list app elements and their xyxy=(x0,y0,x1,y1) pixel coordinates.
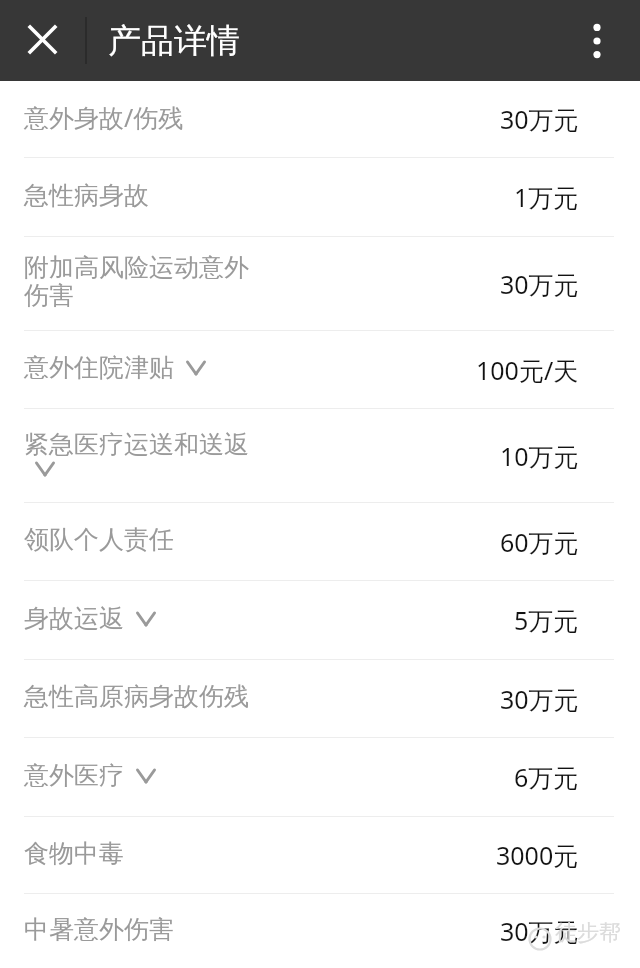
button[interactable]: 紧急医疗运送和送返 xyxy=(0,409,640,502)
staticText: 60万元 xyxy=(500,525,579,559)
staticText: 紧急医疗运送和送返 xyxy=(24,429,249,460)
staticText: 3000元 xyxy=(496,838,579,872)
button[interactable]: 领队个人责任 xyxy=(0,503,640,580)
staticText: 意外身故/伤残 xyxy=(24,100,184,134)
staticText: 身故运返 xyxy=(24,603,124,634)
button[interactable]: 急性病身故 xyxy=(0,158,640,236)
staticText: 急性高原病身故伤残 xyxy=(24,681,249,712)
button[interactable]: 身故运返 xyxy=(0,581,640,659)
button[interactable]: 意外身故/伤残 xyxy=(0,81,640,157)
button[interactable]: More options xyxy=(560,0,640,81)
button[interactable]: 中暑意外伤害 xyxy=(0,894,640,968)
button[interactable]: 意外住院津贴 xyxy=(0,331,640,408)
staticText: 100元/天 xyxy=(476,353,579,387)
staticText: 5万元 xyxy=(514,603,579,637)
button[interactable]: 食物中毒 xyxy=(0,817,640,893)
button[interactable]: 急性高原病身故伤残 xyxy=(0,660,640,737)
staticText: 中暑意外伤害 xyxy=(24,914,174,945)
staticText: 30万元 xyxy=(500,682,579,716)
staticText: 6万元 xyxy=(514,760,579,794)
staticText: 附加高风险运动意外伤害 xyxy=(24,252,264,311)
staticText: 10万元 xyxy=(500,439,579,473)
staticText: 意外医疗 xyxy=(24,760,124,791)
staticText: 食物中毒 xyxy=(24,838,124,869)
staticText: 30万元 xyxy=(500,102,579,136)
button[interactable]: 意外医疗 xyxy=(0,738,640,816)
staticText: 30万元 xyxy=(500,914,579,948)
button[interactable]: 附加高风险运动意外伤害 xyxy=(0,237,640,330)
staticText: 1万元 xyxy=(514,180,579,214)
staticText: 意外住院津贴 xyxy=(24,352,174,383)
staticText: 30万元 xyxy=(500,267,579,301)
button[interactable]: Close xyxy=(8,0,76,81)
staticText: 急性病身故 xyxy=(24,180,149,211)
staticText: 产品详情 xyxy=(108,20,240,62)
staticText: 徒步帮 xyxy=(555,919,621,947)
staticText: 领队个人责任 xyxy=(24,524,174,555)
